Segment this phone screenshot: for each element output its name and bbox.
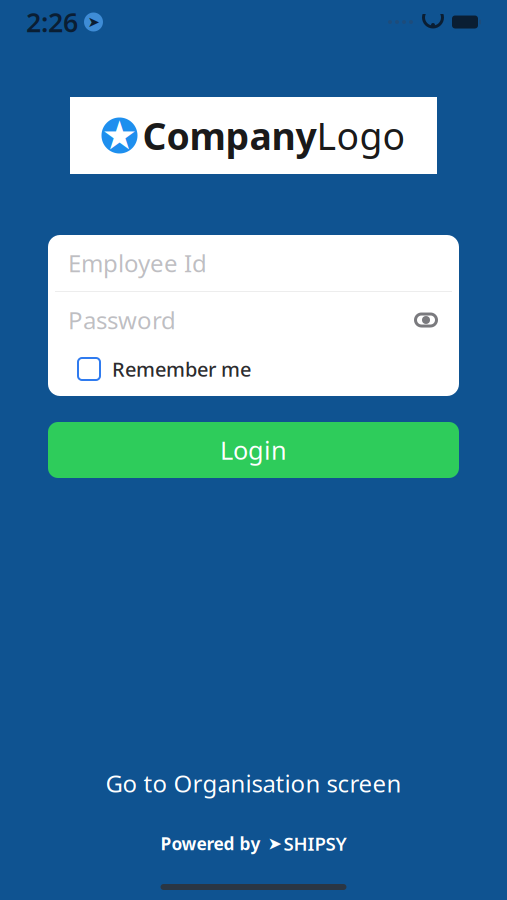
staticText: 2:26 <box>26 4 78 40</box>
staticText: Powered by <box>160 832 260 855</box>
staticText: SHIPSY <box>283 831 346 856</box>
staticText: ➤ <box>87 14 99 30</box>
staticText: Password <box>68 304 176 336</box>
staticText: Company <box>142 111 316 160</box>
staticText: Go to Organisation screen <box>105 767 401 799</box>
staticText: Login <box>220 433 287 467</box>
button[interactable]: Password <box>48 292 459 348</box>
staticText: Remember me <box>112 356 251 382</box>
button[interactable]: Remember me <box>48 348 459 390</box>
staticText: Logo <box>316 111 405 160</box>
staticText: ★ <box>101 113 137 158</box>
button[interactable]: Login <box>48 422 459 478</box>
staticText: Employee Id <box>68 247 207 279</box>
button[interactable]: Go to Organisation screen <box>95 761 411 805</box>
button[interactable]: Employee Id <box>48 235 459 291</box>
staticText: ➤ <box>267 834 282 853</box>
